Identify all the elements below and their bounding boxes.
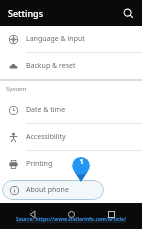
button[interactable]: Date & time	[0, 97, 142, 123]
staticText: Settings	[8, 7, 44, 19]
button[interactable]: Back	[24, 206, 40, 222]
button[interactable]: Language & input	[0, 26, 142, 52]
button[interactable]: Printing	[0, 151, 142, 177]
staticText: About phone	[26, 185, 69, 195]
button[interactable]: Home	[63, 206, 79, 222]
staticText: System	[6, 85, 27, 93]
button[interactable]: About phone	[2, 180, 104, 200]
staticText: Accessibility	[26, 132, 66, 142]
staticText: Backup & reset	[26, 61, 76, 71]
button[interactable]: Backup & reset	[0, 53, 142, 79]
staticText: 1	[79, 157, 84, 167]
staticText: Source: https://www.stellarinfo.com/arti…	[0, 216, 142, 223]
staticText: Date & time	[26, 105, 66, 115]
staticText: Printing	[26, 159, 53, 169]
button[interactable]: Search	[120, 5, 136, 21]
button[interactable]: Recent apps	[103, 206, 119, 222]
staticText: Language & input	[26, 34, 85, 44]
button[interactable]: Accessibility	[0, 124, 142, 150]
